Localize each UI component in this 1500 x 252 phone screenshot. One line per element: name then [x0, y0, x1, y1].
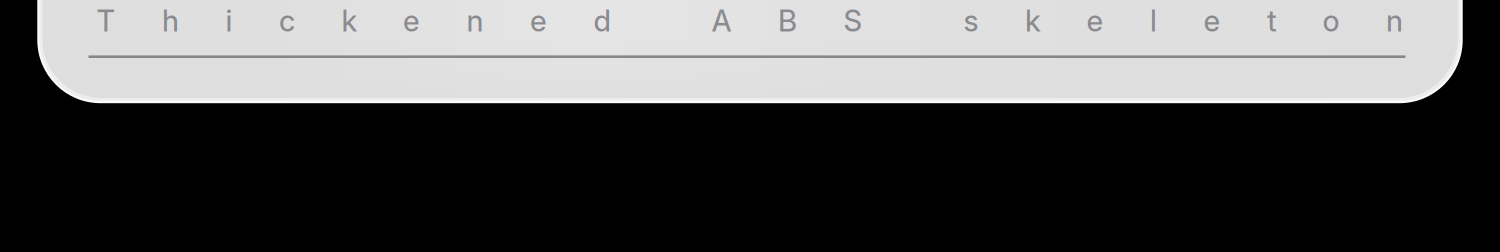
button[interactable]: Thickened ABS skeleton	[88, 3, 1411, 58]
staticText: Thickened ABS skeleton	[96, 3, 1403, 38]
